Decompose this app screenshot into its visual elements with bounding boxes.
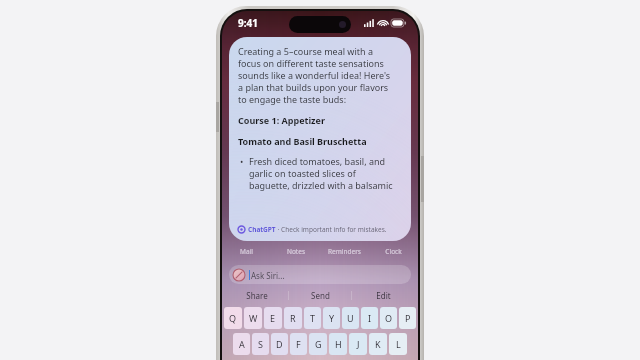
button[interactable]: S bbox=[252, 333, 269, 355]
button[interactable]: Clock bbox=[369, 244, 418, 259]
staticText: Ask Siri... bbox=[251, 270, 285, 281]
staticText: Fresh diced tomatoes, basil, and garlic … bbox=[249, 155, 393, 191]
staticText: Notes bbox=[287, 247, 305, 256]
staticText: Reminders bbox=[328, 247, 361, 256]
other: Siri bbox=[233, 269, 245, 281]
staticText: Edit bbox=[376, 290, 391, 301]
button[interactable]: F bbox=[290, 333, 307, 355]
button[interactable]: H bbox=[329, 333, 347, 355]
staticText: · Check important info for mistakes. bbox=[276, 225, 387, 234]
button[interactable]: D bbox=[271, 333, 288, 355]
staticText: • bbox=[240, 155, 244, 167]
staticText: Share bbox=[246, 290, 268, 301]
staticText: W bbox=[249, 312, 258, 324]
staticText: J bbox=[357, 338, 360, 350]
staticText: G bbox=[315, 338, 322, 350]
button[interactable]: G bbox=[309, 333, 327, 355]
staticText: L bbox=[396, 338, 401, 350]
button[interactable]: Mail bbox=[222, 244, 271, 259]
button[interactable]: Q bbox=[224, 307, 242, 329]
staticText: U bbox=[347, 312, 354, 324]
staticText: Course 1: Appetizer bbox=[238, 114, 325, 126]
staticText: ChatGPT bbox=[248, 225, 276, 234]
button[interactable]: P bbox=[399, 307, 416, 329]
button[interactable]: Send bbox=[289, 288, 351, 303]
button[interactable]: O bbox=[380, 307, 397, 329]
staticText: D bbox=[276, 338, 283, 350]
staticText: Q bbox=[229, 312, 237, 324]
button[interactable]: Reminders bbox=[320, 244, 369, 259]
button[interactable]: J bbox=[349, 333, 367, 355]
button[interactable]: Notes bbox=[271, 244, 320, 259]
staticText: E bbox=[270, 312, 276, 324]
staticText: P bbox=[405, 312, 411, 324]
button[interactable]: Creating a 5–course meal with a focus on… bbox=[229, 37, 411, 241]
button[interactable]: Siri bbox=[229, 265, 411, 284]
staticText: T bbox=[310, 312, 316, 324]
button[interactable]: Edit bbox=[352, 288, 414, 303]
button[interactable]: R bbox=[284, 307, 302, 329]
button[interactable]: T bbox=[304, 307, 321, 329]
staticText: A bbox=[239, 338, 245, 350]
staticText: H bbox=[335, 338, 342, 350]
staticText: Clock bbox=[385, 247, 402, 256]
button[interactable]: L bbox=[389, 333, 407, 355]
staticText: 9:41 bbox=[238, 16, 258, 30]
staticText: Creating a 5–course meal with a focus on… bbox=[238, 45, 391, 105]
staticText: K bbox=[375, 338, 381, 350]
button[interactable]: Share bbox=[226, 288, 288, 303]
button[interactable]: A bbox=[233, 333, 250, 355]
staticText: Tomato and Basil Bruschetta bbox=[238, 135, 367, 147]
staticText: R bbox=[290, 312, 296, 324]
staticText: I bbox=[368, 312, 372, 324]
staticText: O bbox=[385, 312, 393, 324]
button[interactable]: W bbox=[244, 307, 262, 329]
button[interactable]: K bbox=[369, 333, 387, 355]
staticText: F bbox=[296, 338, 301, 350]
staticText: Mail bbox=[240, 247, 253, 256]
button[interactable]: I bbox=[361, 307, 378, 329]
staticText: Y bbox=[329, 312, 335, 324]
button[interactable]: Y bbox=[323, 307, 340, 329]
button[interactable]: E bbox=[264, 307, 282, 329]
staticText: S bbox=[258, 338, 263, 350]
button[interactable]: U bbox=[342, 307, 359, 329]
staticText: Send bbox=[311, 290, 330, 301]
